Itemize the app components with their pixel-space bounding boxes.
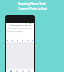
button[interactable]: Document Scanner: [6, 24, 34, 27]
staticText: Document Scanner: [10, 24, 31, 27]
staticText: Scan text from any picture: [8, 27, 32, 30]
staticText: Recent documents: [7, 30, 23, 32]
staticText: Convert Photo to Text: [18, 7, 47, 11]
staticText: Amazing Phone Tools: [18, 2, 46, 6]
